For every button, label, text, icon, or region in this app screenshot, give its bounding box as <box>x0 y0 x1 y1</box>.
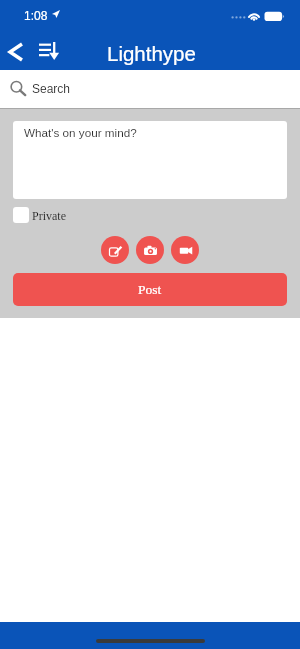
button[interactable]: What's on your mind? <box>13 121 287 199</box>
button[interactable]: Private <box>13 207 66 223</box>
button[interactable]: Sort <box>36 38 62 64</box>
staticText: Search <box>32 82 71 95</box>
staticText: What's on your mind? <box>24 126 137 139</box>
button[interactable]: Back <box>4 40 28 64</box>
button[interactable]: Write post <box>101 236 129 264</box>
staticText: 1:08 <box>24 9 48 22</box>
staticText: Lighthype <box>107 42 196 65</box>
button[interactable]: Post <box>13 273 287 306</box>
staticText: Private <box>32 209 66 222</box>
staticText: Post <box>138 282 162 297</box>
button[interactable]: Record video <box>171 236 199 264</box>
button[interactable]: Search <box>10 70 300 109</box>
button[interactable]: Take photo <box>136 236 164 264</box>
